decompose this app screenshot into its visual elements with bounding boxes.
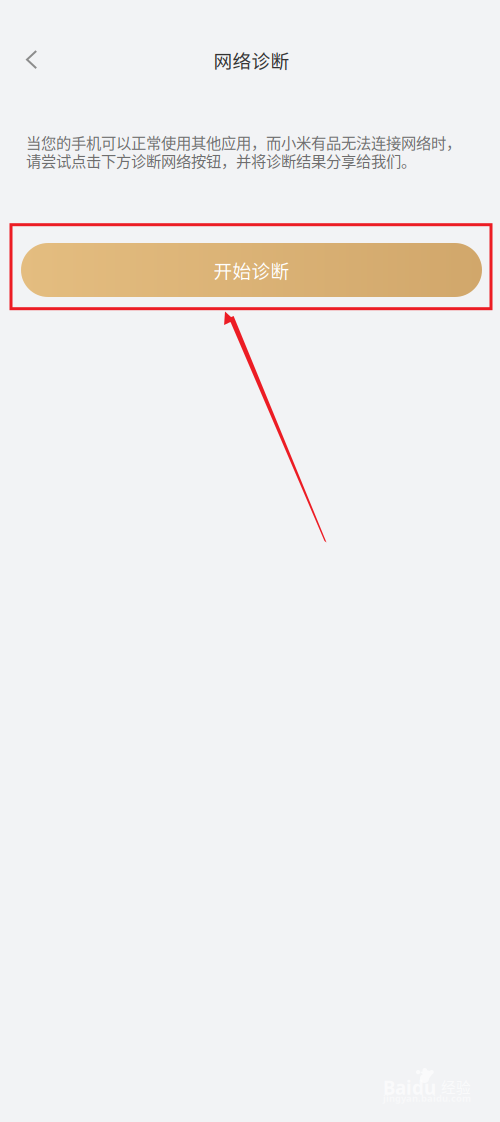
button[interactable]: 开始诊断 [21, 243, 482, 297]
staticText: 当您的手机可以正常使用其他应用，而小米有品无法连接网络时，请尝试点击下方诊断网络… [26, 131, 461, 171]
staticText: 开始诊断 [213, 256, 289, 283]
staticText: 网络诊断 [213, 46, 289, 73]
button[interactable]: Back [6, 38, 58, 82]
staticText: Baidu [383, 1075, 436, 1100]
